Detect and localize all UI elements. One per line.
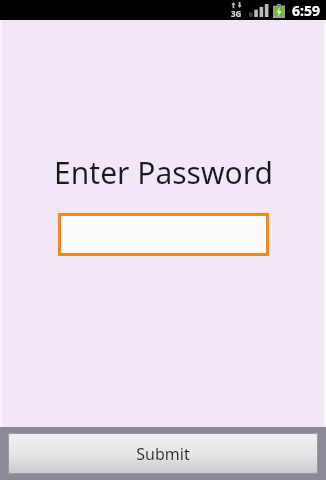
other: Cellular signal strength [249, 4, 265, 17]
button[interactable]: Submit [8, 433, 318, 474]
other: Battery charging [273, 4, 285, 18]
staticText: Submit [136, 443, 190, 465]
staticText: Enter Password [54, 152, 273, 193]
staticText: 3G [231, 8, 242, 19]
staticText: 6:59 [292, 1, 320, 20]
other: 3G data connection [231, 2, 242, 19]
